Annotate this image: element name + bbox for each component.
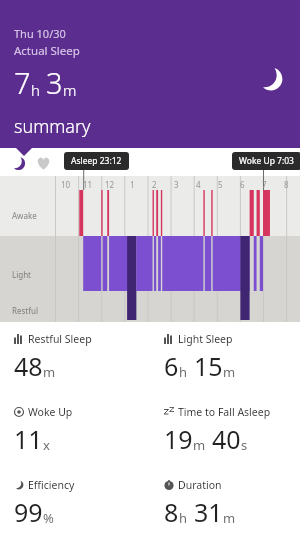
- staticText: 5: [218, 179, 223, 190]
- staticText: Woke Up: [28, 405, 73, 419]
- button[interactable]: Woke Up: [0, 395, 150, 468]
- staticText: h: [179, 363, 188, 381]
- staticText: 8: [164, 495, 179, 529]
- other: Sleep: [258, 66, 284, 92]
- button[interactable]: Light Sleep: [150, 322, 300, 395]
- button[interactable]: Woke Up 7:03: [232, 152, 300, 170]
- staticText: Light Sleep: [178, 332, 233, 346]
- button[interactable]: Heart rate: [33, 153, 53, 173]
- staticText: 6: [164, 349, 179, 383]
- staticText: 8: [284, 179, 289, 190]
- staticText: 11: [14, 422, 43, 456]
- staticText: 3: [174, 179, 179, 190]
- staticText: Time to Fall Asleep: [178, 405, 271, 419]
- staticText: 3: [46, 63, 63, 102]
- button[interactable]: Asleep 23:12: [64, 152, 129, 170]
- staticText: m: [43, 363, 56, 381]
- staticText: summary: [14, 114, 91, 139]
- staticText: 31: [194, 495, 223, 529]
- staticText: s: [241, 436, 248, 454]
- button[interactable]: Sleep chart: [8, 153, 28, 173]
- staticText: %: [43, 509, 54, 527]
- staticText: Actual Sleep: [14, 43, 80, 59]
- staticText: Woke Up 7:03: [239, 155, 294, 167]
- staticText: 7: [262, 179, 267, 190]
- staticText: Thu 10/30: [14, 26, 66, 41]
- staticText: Awake: [12, 210, 37, 221]
- staticText: 12: [105, 179, 115, 190]
- staticText: Restful: [12, 305, 38, 316]
- staticText: 2: [152, 179, 157, 190]
- staticText: 99: [14, 495, 43, 529]
- button[interactable]: Efficiency: [0, 468, 150, 534]
- button[interactable]: Time to Fall Asleep: [150, 395, 300, 468]
- staticText: x: [43, 436, 50, 454]
- staticText: Restful Sleep: [28, 332, 92, 346]
- staticText: Efficiency: [28, 478, 75, 492]
- staticText: m: [223, 509, 236, 527]
- button[interactable]: Restful Sleep: [0, 322, 150, 395]
- staticText: 7: [14, 63, 31, 102]
- staticText: 19: [164, 422, 193, 456]
- staticText: h: [31, 80, 40, 100]
- staticText: Asleep 23:12: [71, 155, 122, 167]
- staticText: Duration: [178, 478, 222, 492]
- staticText: m: [223, 363, 236, 381]
- staticText: 48: [14, 349, 43, 383]
- staticText: m: [63, 80, 77, 100]
- staticText: 4: [196, 179, 201, 190]
- staticText: 10: [61, 179, 71, 190]
- staticText: 1: [130, 179, 135, 190]
- staticText: 40: [212, 422, 241, 456]
- staticText: h: [179, 509, 188, 527]
- staticText: 6: [240, 179, 245, 190]
- staticText: 11: [83, 179, 93, 190]
- staticText: m: [193, 436, 206, 454]
- staticText: Light: [12, 269, 32, 280]
- staticText: 15: [194, 349, 223, 383]
- button[interactable]: Duration: [150, 468, 300, 534]
